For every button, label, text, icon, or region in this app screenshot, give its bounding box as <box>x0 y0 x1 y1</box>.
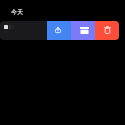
staticText: 今天 <box>11 8 24 15</box>
button[interactable]: Share <box>47 21 71 40</box>
button[interactable] <box>0 21 119 40</box>
button[interactable]: Move to folder <box>71 21 95 40</box>
button[interactable]: Delete <box>95 21 119 40</box>
